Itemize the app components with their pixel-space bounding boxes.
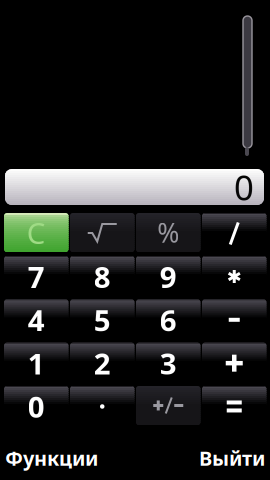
button[interactable]: C xyxy=(4,213,68,252)
staticText: Выйти xyxy=(199,445,265,471)
button[interactable]: 7 xyxy=(4,256,68,295)
button[interactable]: Equals xyxy=(202,386,266,425)
staticText: 8 xyxy=(94,257,111,296)
staticText: 0 xyxy=(28,387,45,426)
staticText: Функции xyxy=(5,445,98,471)
button[interactable]: 4 xyxy=(4,299,68,338)
button[interactable]: 0 xyxy=(4,386,68,425)
staticText: 2 xyxy=(94,344,111,383)
staticText: 0 xyxy=(234,164,254,210)
button[interactable]: 3 xyxy=(136,343,200,382)
button[interactable]: Add xyxy=(202,343,266,382)
staticText: 1 xyxy=(28,344,45,383)
button[interactable]: Subtract xyxy=(202,299,266,338)
button[interactable]: % xyxy=(136,213,200,252)
button[interactable]: 1 xyxy=(4,343,68,382)
staticText: 9 xyxy=(160,257,177,296)
staticText: 4 xyxy=(28,300,45,339)
button[interactable]: Выйти xyxy=(140,445,270,471)
button[interactable]: Square root xyxy=(70,213,134,252)
staticText: 3 xyxy=(160,344,177,383)
button[interactable]: Функции xyxy=(0,445,130,471)
button[interactable]: 5 xyxy=(70,299,134,338)
staticText: % xyxy=(157,215,179,250)
button[interactable]: 9 xyxy=(136,256,200,295)
staticText: 5 xyxy=(94,300,111,339)
staticText: 7 xyxy=(28,257,45,296)
button[interactable]: Divide xyxy=(202,213,266,252)
button[interactable]: Change sign xyxy=(136,386,200,425)
staticText: 6 xyxy=(160,300,177,339)
button[interactable]: 6 xyxy=(136,299,200,338)
button[interactable]: 8 xyxy=(70,256,134,295)
button[interactable]: 2 xyxy=(70,343,134,382)
button[interactable]: Multiply xyxy=(202,256,266,295)
button[interactable]: Decimal point xyxy=(70,386,134,425)
staticText: C xyxy=(27,213,46,252)
